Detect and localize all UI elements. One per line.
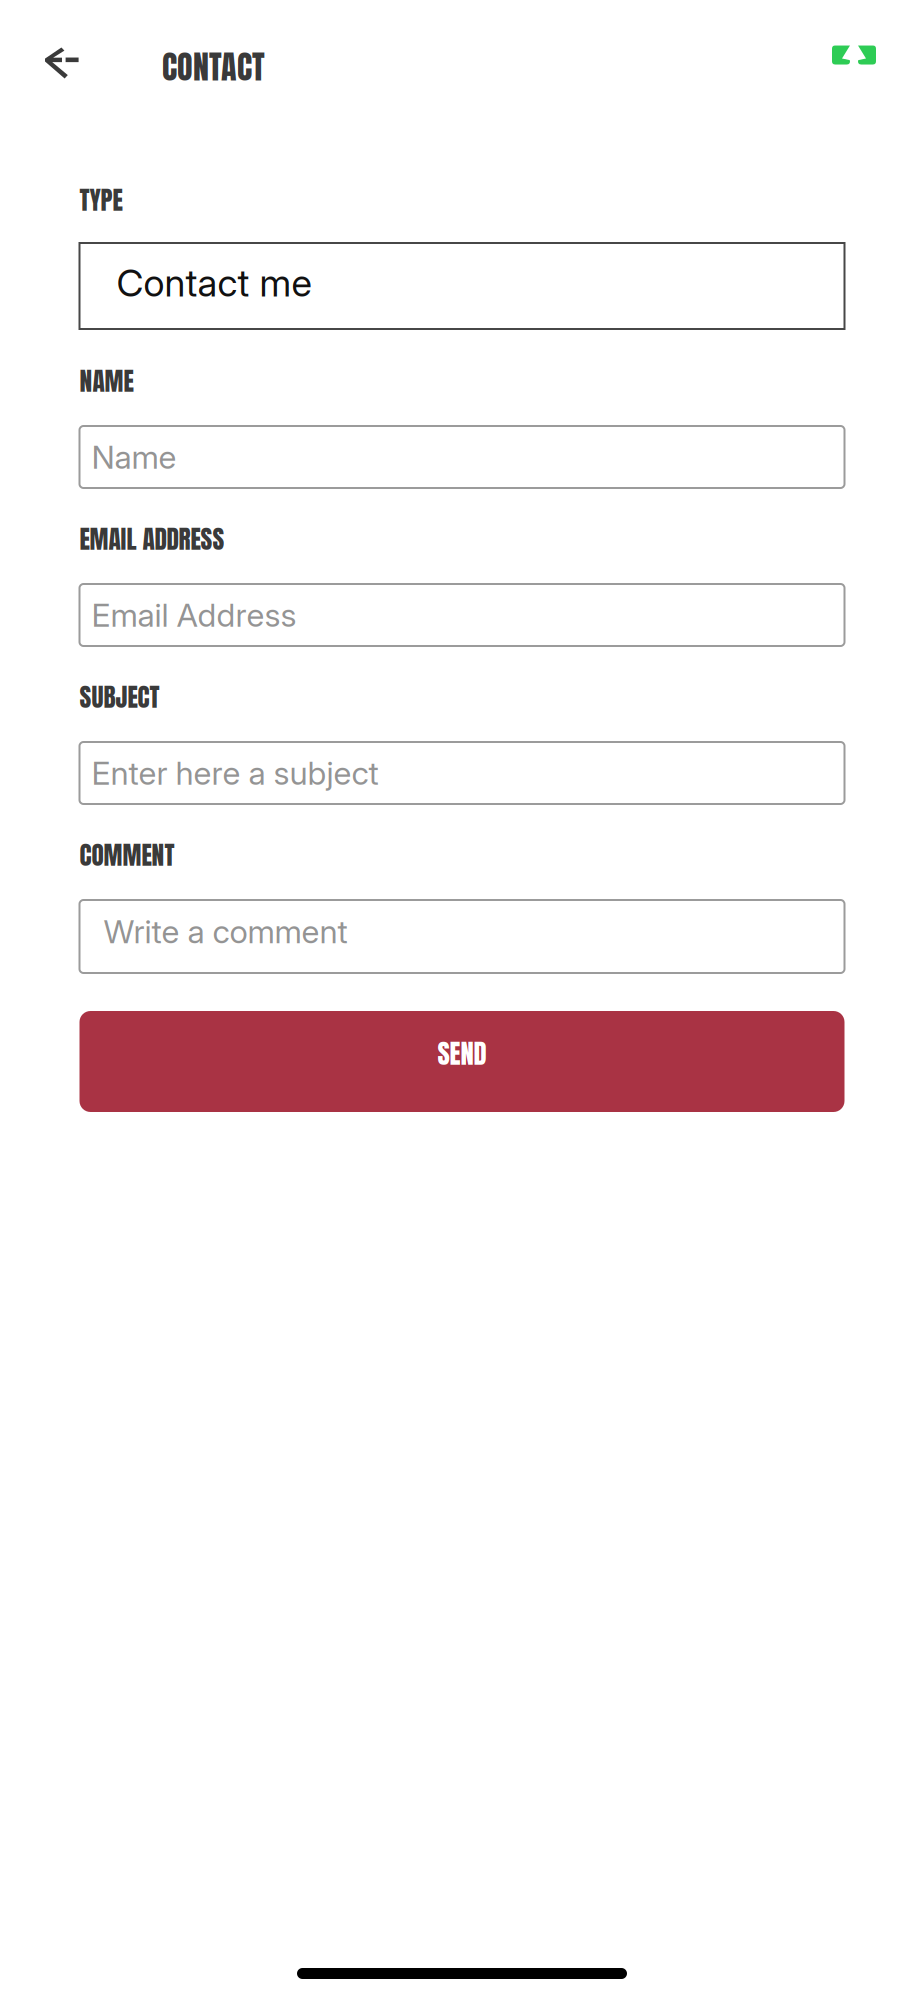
button[interactable]: SEND xyxy=(79,1011,844,1112)
button[interactable]: Contact me xyxy=(79,243,844,329)
staticText: Name xyxy=(91,438,176,476)
button[interactable]: Back xyxy=(23,21,101,99)
staticText: SUBJECT xyxy=(79,678,159,716)
staticText: EMAIL ADDRESS xyxy=(79,520,224,558)
button[interactable]: Write a comment xyxy=(79,900,844,973)
button[interactable]: Quotes xyxy=(815,21,893,99)
staticText: TYPE xyxy=(79,181,122,219)
staticText: SEND xyxy=(437,1033,486,1073)
staticText: Enter here a subject xyxy=(91,754,378,792)
staticText: Write a comment xyxy=(103,912,347,951)
staticText: Contact me xyxy=(116,260,311,306)
button[interactable]: Name xyxy=(79,426,844,488)
button[interactable]: Enter here a subject xyxy=(79,742,844,804)
staticText: Email Address xyxy=(91,596,296,634)
staticText: COMMENT xyxy=(79,836,174,874)
staticText: CONTACT xyxy=(162,43,265,91)
button[interactable]: Email Address xyxy=(79,584,844,646)
staticText: NAME xyxy=(79,362,133,400)
